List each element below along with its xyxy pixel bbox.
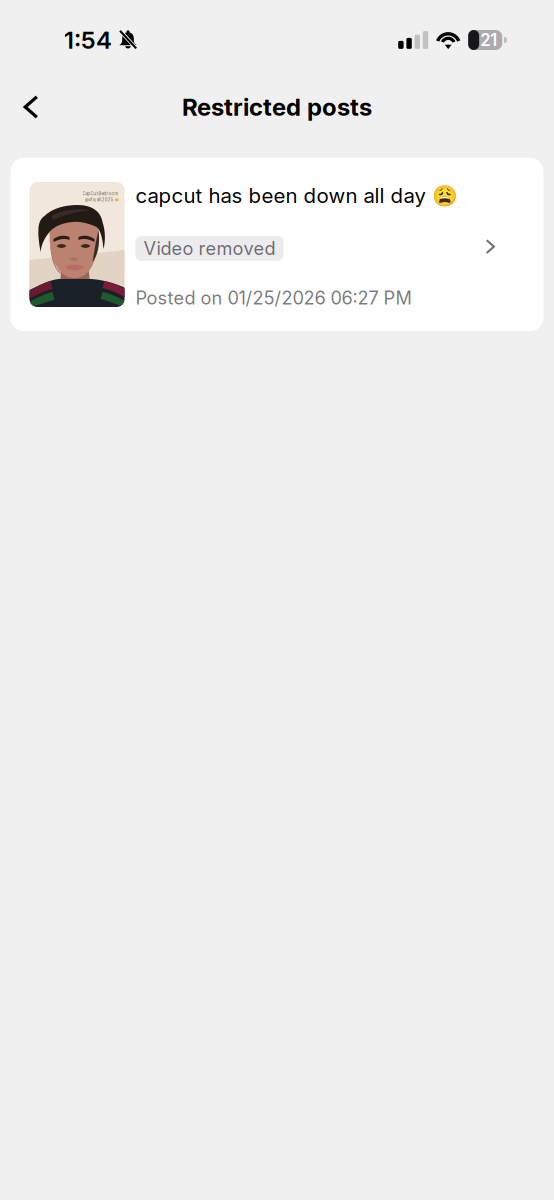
staticText: 21 xyxy=(480,30,497,50)
staticText: @vfx/all.2025 xyxy=(85,197,114,202)
staticText: capcut has been down all day 😩 xyxy=(135,183,457,208)
staticText: 1:54 xyxy=(64,25,112,54)
button[interactable]: CapCut·Bedroom xyxy=(10,158,543,331)
staticText: Restricted posts xyxy=(182,92,372,121)
button[interactable]: Back xyxy=(8,85,54,129)
staticText: Video removed xyxy=(143,237,275,259)
staticText: CapCut·Bedroom xyxy=(82,191,118,196)
staticText: Posted on 01/25/2026 06:27 PM xyxy=(135,287,411,309)
